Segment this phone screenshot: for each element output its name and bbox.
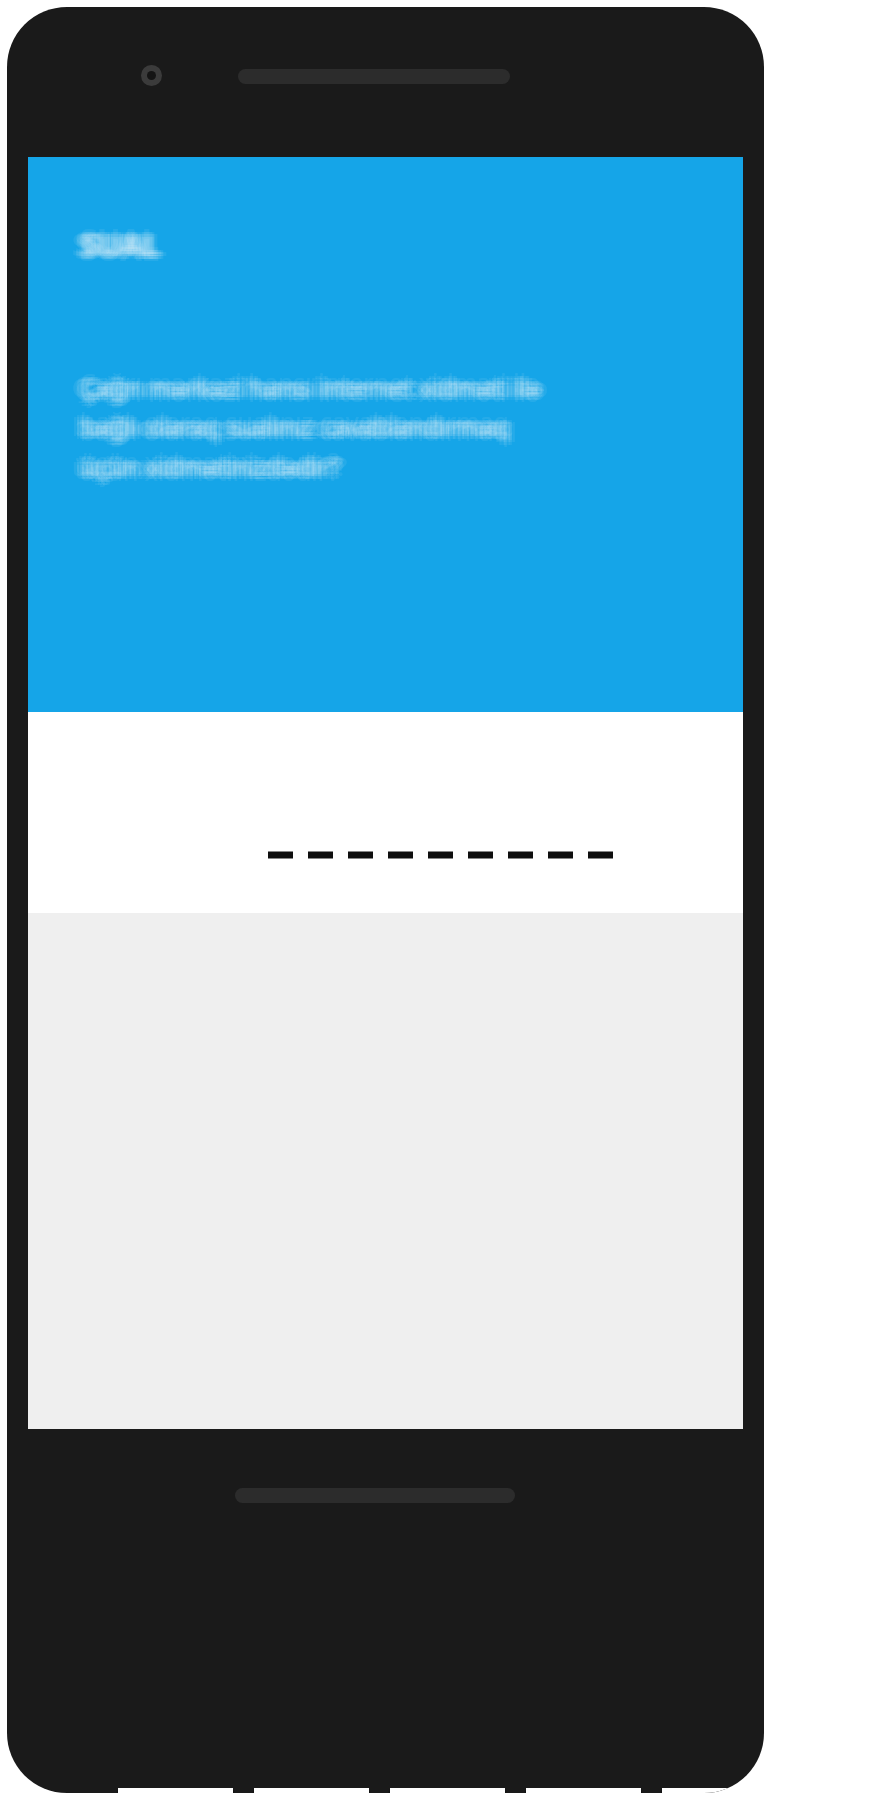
- staticText: SUAL: [78, 221, 157, 263]
- staticText: SUAL: [83, 226, 162, 268]
- button[interactable]: y: [662, 1788, 764, 1793]
- staticText: Çağrı mərkəzi hansı internet xidməti ilə…: [80, 365, 541, 479]
- staticText: SUAL: [85, 223, 164, 265]
- staticText: Çağrı mərkəzi hansı internet xidməti ilə…: [88, 370, 549, 484]
- staticText: SUAL: [75, 223, 154, 265]
- staticText: SUAL: [78, 226, 157, 268]
- staticText: SUAL: [85, 221, 164, 263]
- staticText: SUAL: [85, 226, 164, 268]
- staticText: SUAL: [75, 226, 154, 268]
- staticText: Çağrı mərkəzi hansı internet xidməti ilə…: [78, 368, 539, 482]
- staticText: Çağrı mərkəzi hansı internet xidməti ilə…: [72, 370, 533, 484]
- staticText: Çağrı mərkəzi hansı internet xidməti ilə…: [83, 370, 544, 484]
- staticText: Çağrı mərkəzi hansı internet xidməti ilə…: [75, 373, 536, 487]
- staticText: Çağrı mərkəzi hansı internet xidməti ilə…: [83, 368, 544, 482]
- staticText: Çağrı mərkəzi hansı internet xidməti ilə…: [75, 368, 536, 482]
- staticText: SUAL: [80, 218, 159, 260]
- staticText: SUAL: [80, 223, 159, 265]
- staticText: Çağrı mərkəzi hansı internet xidməti ilə…: [83, 373, 544, 487]
- staticText: SUAL: [88, 223, 167, 265]
- staticText: SUAL: [75, 221, 154, 263]
- staticText: Çağrı mərkəzi hansı internet xidməti ilə…: [78, 370, 539, 484]
- staticText: Çağrı mərkəzi hansı internet xidməti ilə…: [85, 370, 546, 484]
- staticText: Çağrı mərkəzi hansı internet xidməti ilə…: [85, 368, 546, 482]
- staticText: Çağrı mərkəzi hansı internet xidməti ilə…: [85, 373, 546, 487]
- staticText: SUAL: [78, 223, 157, 265]
- staticText: Çağrı mərkəzi hansı internet xidməti ilə…: [78, 373, 539, 487]
- staticText: Çağrı mərkəzi hansı internet xidməti ilə…: [75, 370, 536, 484]
- staticText: SUAL: [72, 223, 151, 265]
- staticText: Çağrı mərkəzi hansı internet xidməti ilə…: [80, 370, 541, 484]
- staticText: Çağrı mərkəzi hansı internet xidməti ilə…: [80, 375, 541, 489]
- staticText: SUAL: [80, 226, 159, 268]
- staticText: SUAL: [83, 223, 162, 265]
- staticText: SUAL: [80, 228, 159, 270]
- staticText: SUAL: [80, 221, 159, 263]
- staticText: Çağrı mərkəzi hansı internet xidməti ilə…: [80, 368, 541, 482]
- staticText: Çağrı mərkəzi hansı internet xidməti ilə…: [80, 373, 541, 487]
- staticText: SUAL: [83, 221, 162, 263]
